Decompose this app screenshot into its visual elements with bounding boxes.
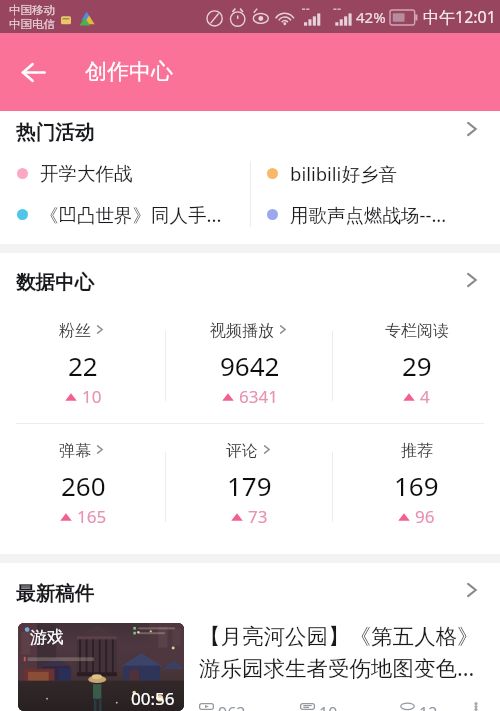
- button[interactable]: 视频播放: [166, 321, 333, 408]
- staticText: 创作中心: [85, 58, 173, 86]
- staticText: 推荐: [401, 441, 433, 461]
- staticText: 4: [420, 385, 430, 408]
- staticText: 弹幕: [59, 441, 91, 461]
- staticText: 数据中心: [16, 270, 94, 295]
- staticText: 开学大作战: [40, 162, 133, 185]
- staticText: 游戏: [30, 627, 64, 648]
- staticText: 42%: [356, 7, 386, 27]
- staticText: 9642: [220, 348, 280, 383]
- staticText: 169: [394, 468, 439, 503]
- staticText: 29: [402, 348, 432, 383]
- staticText: 最新稿件: [16, 581, 94, 606]
- staticText: 【月亮河公园】《第五人格》游乐园求生者受伤地图变色...: [199, 623, 488, 683]
- staticText: 6341: [239, 385, 278, 408]
- staticText: 73: [248, 505, 268, 528]
- button[interactable]: 用歌声点燃战场--...: [250, 194, 500, 235]
- staticText: 179: [227, 468, 272, 503]
- staticText: 260: [61, 468, 106, 503]
- staticText: 00:56: [131, 687, 175, 710]
- staticText: 165: [77, 505, 107, 528]
- button[interactable]: 最新稿件: [0, 563, 500, 623]
- staticText: 962: [218, 702, 246, 711]
- button[interactable]: 开学大作战: [0, 153, 250, 194]
- button[interactable]: 弹幕: [0, 441, 166, 528]
- button[interactable]: More options: [464, 702, 488, 711]
- staticText: 专栏阅读: [385, 321, 449, 341]
- staticText: 中国移动: [9, 3, 55, 17]
- staticText: 22: [68, 348, 98, 383]
- staticText: bilibili好乡音: [290, 161, 397, 186]
- button[interactable]: 数据中心: [0, 253, 500, 312]
- staticText: 12: [419, 702, 438, 711]
- staticText: 粉丝: [59, 321, 91, 341]
- button[interactable]: 专栏阅读: [333, 321, 500, 408]
- staticText: 热门活动: [16, 120, 94, 145]
- staticText: 96: [415, 505, 435, 528]
- button[interactable]: 评论: [166, 441, 333, 528]
- button[interactable]: 粉丝: [0, 321, 166, 408]
- staticText: 中国电信: [9, 17, 55, 31]
- staticText: 用歌声点燃战场--...: [290, 202, 447, 227]
- button[interactable]: Back: [0, 39, 66, 105]
- button[interactable]: 推荐: [333, 441, 500, 528]
- staticText: 评论: [226, 441, 258, 461]
- staticText: 10: [319, 702, 338, 711]
- staticText: 中午12:01: [423, 6, 496, 28]
- button[interactable]: 游戏: [0, 623, 500, 711]
- button[interactable]: 热门活动: [0, 111, 500, 153]
- staticText: 视频播放: [210, 321, 274, 341]
- staticText: 10: [82, 385, 102, 408]
- button[interactable]: bilibili好乡音: [250, 153, 500, 194]
- button[interactable]: 《凹凸世界》同人手...: [0, 194, 250, 235]
- staticText: 《凹凸世界》同人手...: [40, 202, 222, 227]
